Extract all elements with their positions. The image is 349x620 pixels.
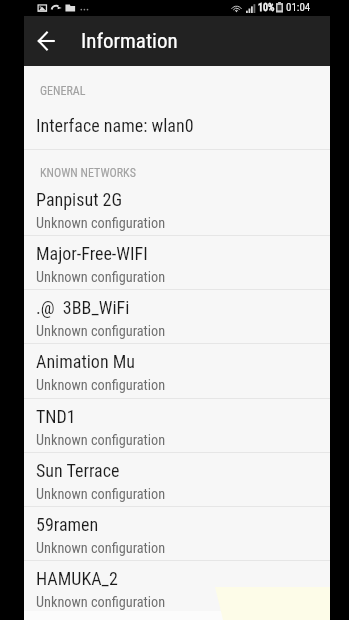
staticText: Unknown configuration — [36, 323, 166, 340]
staticText: KNOWN NETWORKS — [40, 166, 136, 180]
staticText: Unknown configuration — [36, 540, 166, 557]
staticText: HAMUKA_2 — [36, 568, 118, 589]
staticText: Unknown configuration — [36, 269, 166, 286]
button[interactable]: TND1 — [24, 399, 330, 452]
button[interactable]: 59ramen — [24, 507, 330, 560]
button[interactable]: Back — [27, 22, 65, 60]
staticText: Animation Mu — [36, 351, 136, 372]
staticText: GENERAL — [40, 84, 86, 98]
button[interactable]: HAMUKA_2 — [24, 561, 330, 615]
staticText: Sun Terrace — [36, 460, 120, 481]
button[interactable]: Panpisut 2G — [24, 182, 330, 235]
button[interactable]: Animation Mu — [24, 344, 330, 398]
staticText: Unknown configuration — [36, 432, 166, 449]
staticText: Unknown configuration — [36, 486, 166, 503]
staticText: 59ramen — [36, 514, 99, 535]
staticText: Panpisut 2G — [36, 189, 123, 210]
staticText: Unknown configuration — [36, 594, 166, 611]
staticText: Information — [81, 29, 178, 54]
staticText: TND1 — [36, 406, 76, 427]
staticText: 10% — [258, 2, 275, 14]
staticText: Interface name: wlan0 — [36, 115, 194, 136]
staticText: Major-Free-WIFI — [36, 243, 148, 264]
staticText: Unknown configuration — [36, 377, 166, 394]
button[interactable]: Sun Terrace — [24, 453, 330, 506]
button[interactable]: .@ 3BB_WiFi — [24, 290, 330, 343]
staticText: 01:04 — [286, 1, 311, 14]
staticText: Unknown configuration — [36, 215, 166, 232]
staticText: .@ 3BB_WiFi — [36, 297, 130, 318]
button[interactable]: Major-Free-WIFI — [24, 236, 330, 289]
button[interactable]: Interface name: wlan0 — [24, 105, 330, 149]
